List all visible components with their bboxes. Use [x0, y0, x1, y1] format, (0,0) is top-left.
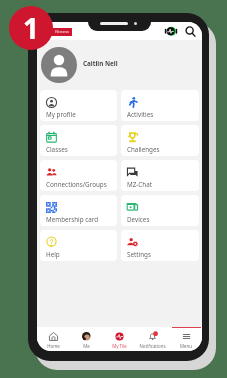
staticText: My profile — [46, 110, 76, 119]
button[interactable]: Search — [183, 24, 197, 38]
staticText: fitness — [55, 29, 70, 35]
staticText: Connections/Groups — [46, 180, 107, 189]
button[interactable]: Classes — [40, 125, 117, 156]
button[interactable]: Activities — [121, 90, 199, 121]
staticText: 1 — [23, 9, 40, 47]
button[interactable]: Devices — [121, 195, 199, 226]
button[interactable]: Settings — [121, 230, 199, 261]
staticText: Notifications — [139, 343, 166, 349]
button[interactable]: Caitlin Nell — [37, 40, 202, 90]
staticText: Settings — [127, 250, 151, 259]
staticText: Me — [83, 343, 90, 349]
button[interactable]: My profile — [40, 90, 117, 121]
button[interactable]: Help — [40, 230, 117, 261]
staticText: Challenges — [127, 145, 160, 154]
staticText: Classes — [46, 145, 68, 154]
button[interactable]: My Tile — [103, 327, 136, 351]
button[interactable]: Challenges — [121, 125, 199, 156]
staticText: My Tile — [112, 343, 127, 349]
button[interactable]: Step 1 — [9, 6, 53, 50]
staticText: Caitlin Nell — [83, 59, 118, 68]
staticText: Help — [46, 250, 60, 259]
staticText: MZ-Chat — [127, 180, 153, 189]
button[interactable]: Connect device — [164, 24, 178, 38]
staticText: Menu — [180, 343, 192, 349]
button[interactable]: Home — [37, 327, 70, 351]
button[interactable]: Notifications — [136, 327, 169, 351]
staticText: Devices — [127, 215, 150, 224]
button[interactable]: Menu — [169, 327, 202, 351]
button[interactable]: MZ-Chat — [121, 160, 199, 191]
button[interactable]: Logo — [44, 28, 72, 36]
button[interactable]: Me — [70, 327, 103, 351]
button[interactable]: Membership card — [40, 195, 117, 226]
button[interactable]: Connections/Groups — [40, 160, 117, 191]
staticText: Home — [47, 343, 60, 349]
staticText: Activities — [127, 110, 154, 119]
staticText: Membership card — [46, 215, 99, 224]
